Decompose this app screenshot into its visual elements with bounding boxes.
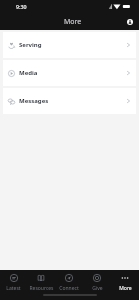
staticText: More [64, 17, 82, 27]
button[interactable]: Latest [0, 270, 27, 300]
button[interactable]: Connect [55, 270, 83, 300]
button[interactable]: Messages [3, 88, 136, 114]
button[interactable]: Serving [3, 32, 136, 58]
staticText: Latest [6, 285, 21, 292]
staticText: Media [19, 69, 38, 77]
staticText: More [119, 285, 132, 292]
button[interactable]: Media [3, 60, 136, 86]
button[interactable]: More [111, 270, 139, 300]
staticText: Messages [19, 97, 49, 105]
staticText: Connect [59, 285, 79, 292]
button[interactable]: Give [83, 270, 111, 300]
staticText: 9:30 [16, 3, 27, 10]
staticText: Give [92, 285, 103, 292]
button[interactable]: Resources [27, 270, 55, 300]
staticText: Resources [29, 285, 54, 292]
staticText: Serving [19, 41, 42, 49]
button[interactable]: Account [124, 16, 136, 28]
